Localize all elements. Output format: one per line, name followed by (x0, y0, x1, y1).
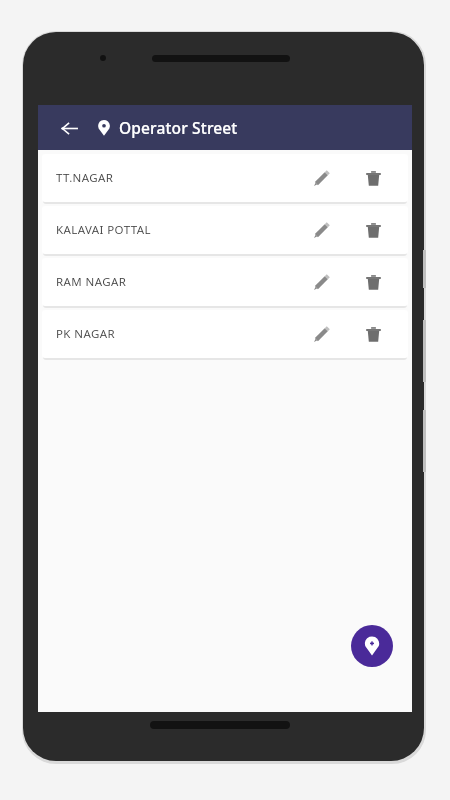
button[interactable]: RAM NAGAR (42, 258, 408, 306)
button[interactable]: TT.NAGAR (42, 154, 408, 202)
staticText: PK NAGAR (56, 326, 302, 342)
staticText: Operator Street (119, 117, 238, 138)
staticText: RAM NAGAR (56, 274, 302, 290)
button[interactable]: Delete KALAVAI POTTAL (354, 211, 392, 249)
button[interactable]: Delete RAM NAGAR (354, 263, 392, 301)
button[interactable]: Edit KALAVAI POTTAL (302, 211, 340, 249)
button[interactable]: Edit TT.NAGAR (302, 159, 340, 197)
button[interactable]: PK NAGAR (42, 310, 408, 358)
button[interactable]: Back (56, 115, 82, 141)
button[interactable]: Edit PK NAGAR (302, 315, 340, 353)
button[interactable]: Delete TT.NAGAR (354, 159, 392, 197)
button[interactable]: Edit RAM NAGAR (302, 263, 340, 301)
button[interactable]: KALAVAI POTTAL (42, 206, 408, 254)
staticText: TT.NAGAR (56, 170, 302, 186)
staticText: KALAVAI POTTAL (56, 222, 302, 238)
button[interactable]: Add street location (351, 625, 393, 667)
button[interactable]: Delete PK NAGAR (354, 315, 392, 353)
